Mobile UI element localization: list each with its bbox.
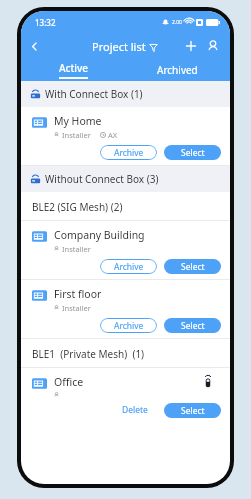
button[interactable]: First floor (21, 280, 230, 339)
staticText: Archive (114, 320, 144, 332)
staticText: 13:32 (35, 17, 56, 28)
button[interactable]: Active (21, 59, 125, 81)
button[interactable]: Remote control (200, 374, 216, 390)
staticText: Installer (62, 303, 91, 313)
button[interactable]: Filter (147, 41, 159, 53)
staticText: Active (59, 61, 88, 75)
button[interactable]: Archive (100, 145, 157, 160)
button[interactable]: Add project (180, 35, 202, 57)
staticText: Archive (114, 147, 144, 159)
staticText: My Home (54, 114, 102, 128)
button[interactable]: Delete (116, 402, 154, 418)
button[interactable]: Archived (125, 59, 230, 81)
button[interactable]: Select (164, 145, 221, 160)
button[interactable]: Account (202, 35, 224, 57)
staticText: Select (181, 405, 205, 417)
button[interactable]: Select (164, 259, 221, 274)
button[interactable]: Archive (100, 259, 157, 274)
staticText: Archive (114, 261, 144, 273)
button[interactable]: Select (164, 318, 221, 333)
staticText: Without Connect Box (3) (45, 172, 159, 186)
staticText: Company Building (54, 228, 145, 242)
staticText: Office (54, 375, 84, 389)
staticText: Installer (62, 130, 91, 140)
staticText: 2.00 (172, 19, 182, 26)
staticText: BLE1 (Private Mesh) (1) (32, 347, 145, 361)
button[interactable]: Office (21, 368, 230, 418)
staticText: Select (181, 147, 205, 159)
button[interactable]: Back (21, 33, 47, 59)
staticText: Select (181, 320, 205, 332)
button[interactable]: My Home (21, 107, 230, 166)
staticText: Select (181, 261, 205, 273)
staticText: Project list (92, 39, 146, 54)
staticText: AX (108, 130, 118, 140)
staticText: Installer (62, 244, 91, 254)
staticText: With Connect Box (1) (45, 87, 143, 101)
staticText: Delete (122, 404, 148, 416)
button[interactable]: Archive (100, 318, 157, 333)
staticText: First floor (54, 287, 102, 301)
staticText: Archived (157, 63, 198, 77)
staticText: BLE2 (SIG Mesh) (2) (32, 200, 123, 214)
button[interactable]: Company Building (21, 221, 230, 280)
button[interactable]: Select (164, 403, 221, 418)
